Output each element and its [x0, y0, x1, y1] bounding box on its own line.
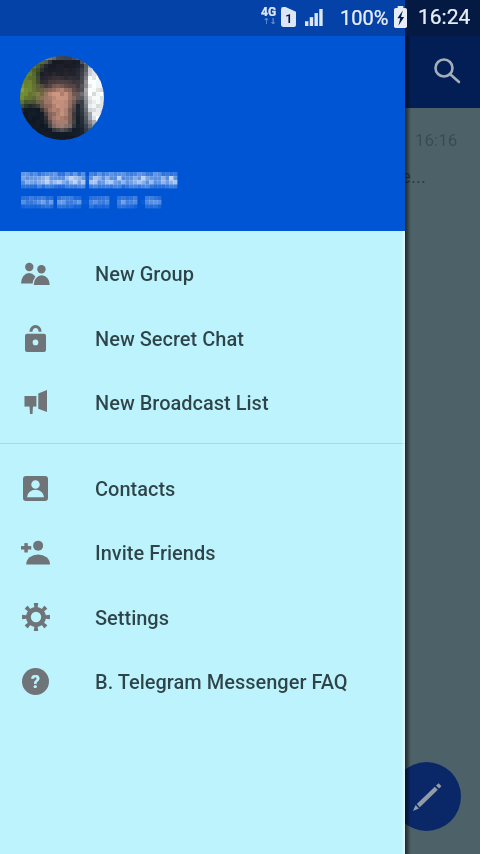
button[interactable]: New Broadcast List — [0, 370, 405, 434]
staticText: 100% — [340, 6, 389, 29]
button[interactable]: Invite Friends — [0, 520, 405, 584]
staticText: 16:24 — [418, 5, 471, 30]
staticText: 16:16 — [415, 130, 458, 150]
staticText: B. Telegram Messenger FAQ — [95, 670, 348, 693]
staticText: e... — [401, 165, 427, 187]
button[interactable]: New Group — [0, 241, 405, 305]
staticText: 4G — [261, 5, 277, 19]
staticText: Contacts — [95, 477, 176, 500]
staticText: Settings — [95, 606, 170, 629]
staticText: New Broadcast List — [95, 391, 269, 414]
button[interactable]: ? — [0, 649, 405, 713]
staticText: Invite Friends — [95, 541, 216, 564]
staticText: ↑↓ — [263, 17, 277, 26]
button[interactable]: Contacts — [0, 456, 405, 520]
staticText: ? — [31, 671, 40, 692]
button[interactable]: Settings — [0, 585, 405, 649]
staticText: New Group — [95, 262, 194, 285]
staticText: 1 — [285, 11, 293, 26]
staticText: New Secret Chat — [95, 327, 244, 350]
button[interactable]: New Secret Chat — [0, 306, 405, 370]
button[interactable]: New message — [392, 762, 461, 831]
button[interactable]: Search — [424, 48, 464, 88]
